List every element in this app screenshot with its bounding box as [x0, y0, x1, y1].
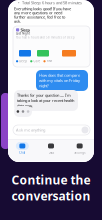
staticText: You had 6 hours and 58 minutes of sleep: [16, 36, 75, 39]
staticText: • Total Sleep: 6 hours and 58 minutes: [18, 0, 82, 5]
staticText: Chat: [19, 151, 25, 154]
button[interactable]: Data: [37, 140, 65, 154]
staticText: Data: [48, 151, 53, 154]
staticText: Everything looks good! If you have any m…: [14, 6, 71, 24]
staticText: Sleep: [20, 27, 30, 32]
staticText: Settings: [74, 151, 85, 154]
button[interactable]: Chat: [8, 140, 37, 154]
staticText: REM: [47, 59, 52, 63]
staticText: conversation: [11, 188, 90, 204]
staticText: Ask me anything: [16, 127, 45, 133]
staticText: Deep: [19, 59, 27, 63]
staticText: How does that compare with my vitals on …: [39, 72, 80, 88]
staticText: Continue the: [11, 172, 90, 188]
staticText: Thanks for your question — I'm taking a …: [17, 92, 74, 108]
staticText: Core: [33, 59, 40, 63]
button[interactable]: Ask me anything: [13, 125, 90, 135]
staticText: Last Night: [16, 32, 30, 35]
button[interactable]: Settings: [65, 140, 94, 154]
